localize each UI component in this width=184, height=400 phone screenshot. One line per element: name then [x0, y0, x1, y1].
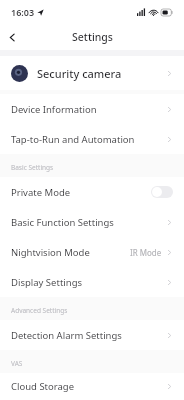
- staticText: Cloud Storage: [11, 380, 75, 393]
- staticText: VAS: [11, 359, 23, 368]
- button[interactable]: Tap-to-Run and Automation: [0, 124, 184, 154]
- staticText: Detection Alarm Settings: [11, 329, 122, 342]
- button[interactable]: Device Information: [0, 94, 184, 124]
- button[interactable]: Security camera: [0, 56, 184, 90]
- staticText: Private Mode: [11, 186, 71, 199]
- staticText: Security camera: [37, 66, 122, 81]
- button[interactable]: Display Settings: [0, 267, 184, 297]
- button[interactable]: Detection Alarm Settings: [0, 320, 184, 350]
- staticText: IR Mode: [130, 247, 162, 258]
- staticText: 16:03: [11, 6, 35, 18]
- button[interactable]: Back: [0, 25, 24, 49]
- button[interactable]: Cloud Storage: [0, 373, 184, 400]
- staticText: Settings: [72, 30, 113, 44]
- staticText: Nightvision Mode: [11, 246, 90, 259]
- staticText: Display Settings: [11, 276, 83, 289]
- staticText: Basic Settings: [11, 163, 54, 172]
- staticText: Tap-to-Run and Automation: [11, 133, 135, 146]
- button[interactable]: Private Mode toggle: [151, 186, 173, 198]
- button[interactable]: Nightvision Mode: [0, 237, 184, 267]
- staticText: Device Information: [11, 103, 97, 116]
- staticText: Basic Function Settings: [11, 216, 114, 229]
- staticText: Advanced Settings: [11, 306, 68, 315]
- button[interactable]: Basic Function Settings: [0, 207, 184, 237]
- button[interactable]: Private Mode: [0, 177, 184, 207]
